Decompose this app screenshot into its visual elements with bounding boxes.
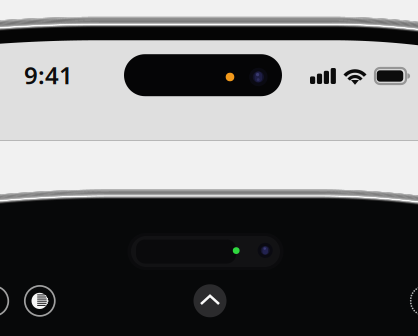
button[interactable]: Photographic styles <box>0 0 418 336</box>
button[interactable]: Show camera controls <box>0 0 418 336</box>
staticText: 9:41 <box>24 59 73 91</box>
